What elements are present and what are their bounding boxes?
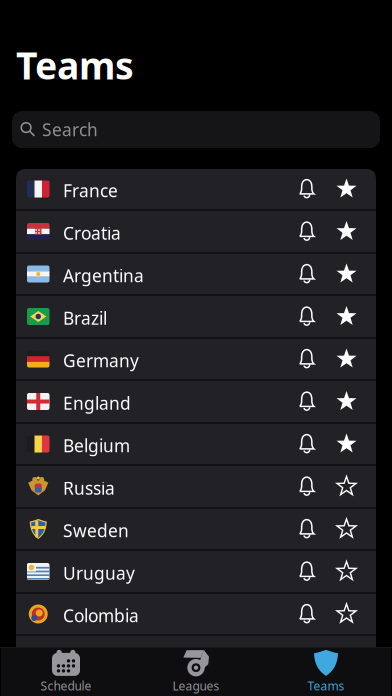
staticText: England [63,391,131,414]
button[interactable]: Colombia [16,594,376,636]
staticText: Brazil [63,306,107,329]
button[interactable]: Notifications for Argentina [299,264,314,284]
button[interactable]: Teams [261,648,391,696]
staticText: Sweden [63,519,129,542]
button[interactable]: Notifications for Russia [299,476,314,496]
button[interactable]: Schedule [1,648,131,696]
button[interactable]: Favorite France [336,178,357,199]
button[interactable]: Brazil [16,296,376,339]
button[interactable]: Notifications for France [299,179,314,199]
button[interactable]: Notifications for England [299,391,314,411]
button[interactable]: Croatia [16,211,376,254]
button[interactable]: Notifications for Colombia [299,604,314,624]
button[interactable]: Notifications for Croatia [299,221,314,241]
staticText: Schedule [40,678,91,694]
button[interactable]: Sweden [16,509,376,551]
staticText: Germany [63,349,139,372]
button[interactable]: Favorite Uruguay [336,561,357,582]
button[interactable]: England [16,381,376,424]
staticText: Teams [16,40,134,90]
button[interactable]: Leagues [131,648,261,696]
staticText: Leagues [172,678,219,694]
staticText: Uruguay [63,561,135,584]
button[interactable]: Favorite Colombia [336,603,357,624]
button[interactable]: Germany [16,339,376,381]
button[interactable]: Belgium [16,424,376,466]
button[interactable]: Favorite Germany [336,348,357,369]
staticText: Colombia [63,604,139,627]
staticText: Teams [307,678,344,694]
button[interactable]: France [16,169,376,211]
staticText: Search [42,118,98,141]
button[interactable]: Favorite Sweden [336,518,357,539]
button[interactable]: Favorite England [336,391,357,412]
button[interactable]: Favorite Argentina [336,263,357,284]
button[interactable]: Notifications for Germany [299,349,314,369]
button[interactable]: Notifications for Uruguay [299,561,314,581]
button[interactable]: Argentina [16,254,376,296]
button[interactable]: Favorite Belgium [336,433,357,454]
button[interactable]: Uruguay [16,551,376,594]
staticText: Croatia [63,221,121,244]
button[interactable]: Favorite Russia [336,476,357,497]
button[interactable]: Russia [16,466,376,509]
button[interactable]: Search [12,111,380,148]
button[interactable]: Favorite Croatia [336,221,357,242]
staticText: Argentina [63,264,144,287]
staticText: France [63,179,118,202]
button[interactable]: Favorite Brazil [336,306,357,327]
button[interactable]: Notifications for Belgium [299,434,314,454]
button[interactable]: Notifications for Sweden [299,519,314,539]
staticText: Russia [63,476,115,499]
staticText: Belgium [63,434,130,457]
button[interactable]: Notifications for Brazil [299,306,314,326]
